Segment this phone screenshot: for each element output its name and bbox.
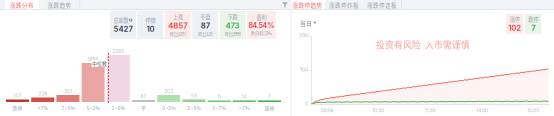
- staticText: 跌停: [528, 15, 538, 23]
- button[interactable]: 涨停: [506, 14, 523, 34]
- staticText: 0~2%: [162, 104, 175, 111]
- staticText: >7%: [38, 104, 48, 111]
- staticText: 1886: [88, 56, 99, 62]
- staticText: 涨跌停炸板: [329, 1, 359, 9]
- staticText: >7%: [239, 104, 249, 111]
- staticText: 当日: [300, 19, 312, 27]
- button[interactable]: 盈利: [247, 11, 276, 39]
- staticText: 14:00: [476, 107, 488, 113]
- staticText: 7~5%: [61, 104, 74, 111]
- staticText: 昨日42.33%: [251, 30, 272, 37]
- staticText: 涨跌停趋势: [292, 1, 322, 9]
- staticText: 5~7%: [213, 104, 226, 111]
- button[interactable]: 涨跌停炸板: [326, 0, 362, 10]
- staticText: 涨跌停连板: [367, 1, 397, 9]
- staticText: 10: [146, 24, 154, 34]
- staticText: 200: [299, 32, 308, 38]
- staticText: 跌停: [12, 104, 22, 111]
- button[interactable]: 当日: [300, 18, 322, 27]
- staticText: 11: [217, 94, 221, 99]
- staticText: 14: [242, 94, 247, 99]
- button[interactable]: 下跌: [220, 11, 246, 39]
- staticText: 11:30: [424, 107, 435, 113]
- staticText: 473: [226, 21, 240, 30]
- staticText: 总家数: [113, 16, 128, 24]
- button[interactable]: 涨跌分布: [5, 0, 39, 10]
- button[interactable]: 总家数: [110, 11, 136, 39]
- staticText: 投资有风险 入市需谨慎: [376, 38, 470, 51]
- staticText: 58: [191, 93, 197, 99]
- staticText: 涨跌趋势: [47, 1, 71, 9]
- button[interactable]: 跌停: [525, 14, 541, 34]
- button[interactable]: 涨跌停趋势: [290, 0, 325, 10]
- button[interactable]: 涨跌停连板: [364, 0, 400, 10]
- button[interactable]: 停牌: [137, 11, 163, 39]
- staticText: 平: [141, 104, 146, 111]
- staticText: 盈利: [256, 13, 266, 21]
- staticText: 7: [268, 94, 271, 99]
- staticText: 上涨: [173, 13, 183, 20]
- button[interactable]: 平盘: [192, 11, 218, 39]
- button[interactable]: 上涨: [165, 11, 191, 39]
- staticText: 平盘: [200, 13, 210, 20]
- staticText: 昨日129: [198, 31, 212, 37]
- staticText: 87: [140, 93, 146, 99]
- staticText: 2~5%: [187, 104, 200, 111]
- staticText: 100: [300, 67, 308, 73]
- staticText: 102: [508, 23, 521, 33]
- staticText: 10:30: [372, 107, 384, 113]
- staticText: 中位数: [92, 60, 107, 67]
- staticText: 下跌: [228, 13, 238, 20]
- staticText: 4857: [168, 21, 187, 30]
- staticText: 238: [38, 91, 47, 97]
- button[interactable]: 涨跌趋势: [40, 0, 79, 10]
- staticText: 107: [13, 93, 21, 99]
- staticText: 涨跌分布: [10, 1, 34, 9]
- staticText: 停牌: [145, 16, 155, 24]
- button[interactable]: 筛选: [279, 0, 291, 10]
- staticText: 303: [164, 88, 173, 94]
- staticText: 09:06: [320, 107, 333, 113]
- staticText: 5427: [113, 24, 132, 34]
- staticText: 7: [531, 23, 535, 33]
- staticText: 87: [201, 21, 210, 30]
- staticText: 昨日2297: [170, 31, 186, 37]
- staticText: 5~2%: [87, 104, 100, 111]
- staticText: 2~0%: [112, 104, 125, 111]
- staticText: 15:00: [527, 107, 539, 113]
- staticText: 涨停: [264, 104, 274, 111]
- staticText: 351: [64, 88, 72, 94]
- staticText: 0: [305, 101, 308, 107]
- staticText: 2265: [112, 48, 124, 54]
- staticText: 84.54%: [248, 21, 274, 30]
- staticText: 涨停: [510, 15, 520, 23]
- staticText: 昨日2990: [225, 31, 241, 37]
